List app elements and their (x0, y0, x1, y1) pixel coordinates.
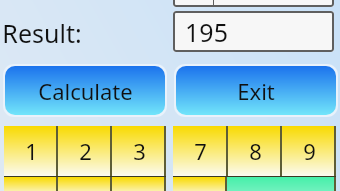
button[interactable] (173, 177, 227, 191)
button[interactable] (112, 177, 166, 191)
staticText: Result: (2, 16, 82, 50)
button[interactable]: 2 (58, 126, 112, 176)
button[interactable] (4, 177, 58, 191)
staticText: Calculate (38, 76, 133, 106)
staticText: 9 (303, 136, 316, 166)
button[interactable]: Exit (176, 66, 336, 115)
staticText: 1 (25, 136, 38, 166)
button[interactable]: 7 (173, 126, 228, 176)
button[interactable]: 1 (4, 126, 58, 176)
staticText: 195 (185, 15, 228, 49)
staticText: 3 (133, 136, 146, 166)
staticText: Exit (237, 76, 275, 106)
button[interactable]: Calculate (5, 66, 165, 115)
button[interactable]: 3 (112, 126, 166, 176)
button[interactable] (58, 177, 112, 191)
button[interactable] (227, 177, 336, 191)
button[interactable]: 8 (228, 126, 282, 176)
staticText: 8 (249, 136, 262, 166)
button[interactable]: Input field (173, 0, 334, 7)
staticText: 7 (194, 136, 207, 166)
staticText: 2 (79, 136, 92, 166)
button[interactable]: 9 (282, 126, 336, 176)
button[interactable]: Result field (173, 11, 334, 52)
